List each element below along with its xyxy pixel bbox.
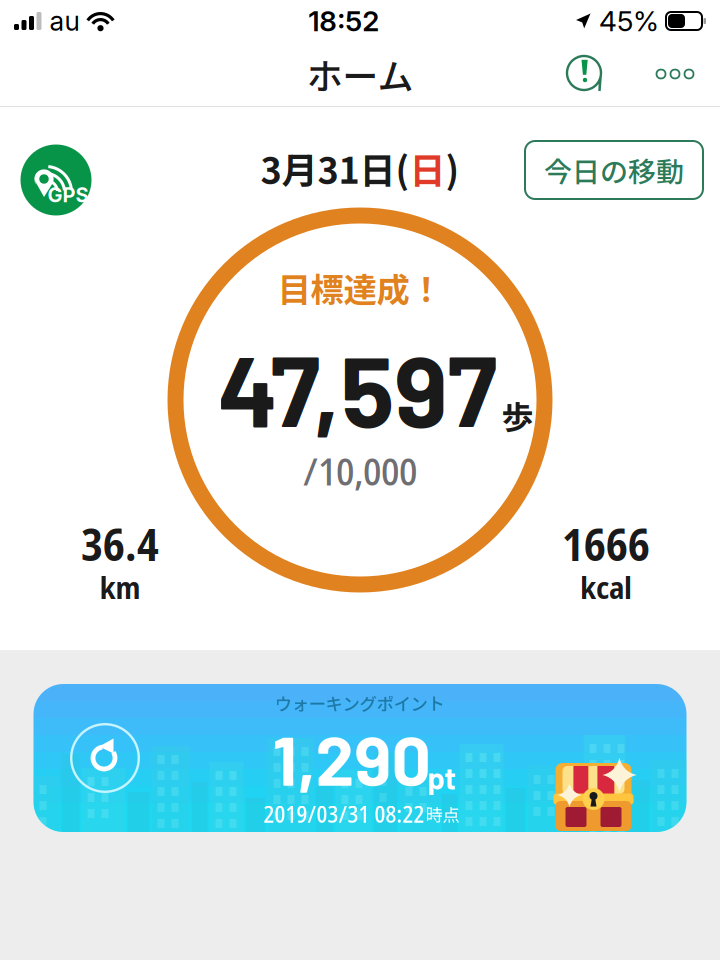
staticText: km: [99, 566, 140, 608]
button[interactable]: お知らせ: [562, 51, 608, 97]
staticText: ウォーキングポイント: [274, 690, 444, 716]
staticText: 日: [409, 142, 445, 194]
staticText: 1666: [562, 514, 650, 574]
button[interactable]: ウォーキングポイント: [33, 684, 686, 832]
staticText: 3月31日(: [260, 142, 409, 194]
staticText: 2019/03/31 08:22: [263, 799, 424, 829]
staticText: au: [49, 5, 79, 37]
staticText: 36.4: [81, 514, 159, 574]
button[interactable]: メニュー: [652, 51, 698, 97]
staticText: 18:52: [308, 4, 379, 38]
button[interactable]: 今日の移動: [525, 141, 703, 199]
staticText: 目標達成！: [277, 263, 442, 312]
staticText: /10,000: [303, 444, 417, 497]
staticText: 今日の移動: [544, 150, 684, 190]
staticText: pt: [427, 759, 456, 796]
staticText: GPS: [47, 183, 88, 207]
staticText: 時点: [425, 801, 459, 827]
staticText: ): [445, 142, 459, 194]
staticText: 47,597: [217, 327, 497, 447]
staticText: ホーム: [306, 48, 413, 100]
staticText: 45%: [599, 4, 659, 38]
staticText: 1,290: [272, 716, 431, 800]
staticText: kcal: [580, 566, 632, 608]
staticText: 歩: [501, 392, 533, 438]
